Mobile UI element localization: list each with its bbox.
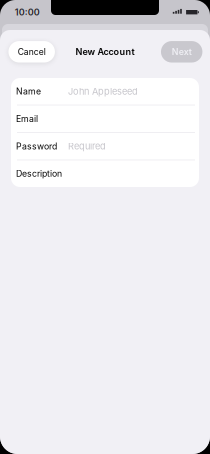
button[interactable]: Email [11,105,199,132]
staticText: Description [16,168,62,179]
staticText: Email [16,113,38,124]
staticText: New Account [75,46,134,57]
button[interactable]: Cancel [8,41,55,62]
staticText: Password [16,141,57,151]
button[interactable]: Next [161,41,202,62]
button[interactable]: Description [11,160,199,187]
button[interactable]: Password [11,133,199,160]
staticText: Name [16,86,41,97]
staticText: John Appleseed [68,86,138,97]
staticText: Next [172,46,192,57]
staticText: Required [68,141,106,152]
staticText: Cancel [18,47,46,57]
staticText: 10:00 [15,7,40,18]
button[interactable]: Name [11,78,199,105]
